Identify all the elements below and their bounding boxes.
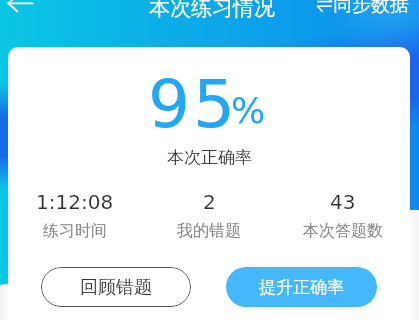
staticText: 本次答题数 (303, 221, 383, 241)
staticText: 43 (330, 190, 356, 213)
button[interactable]: 回顾错题 (41, 267, 191, 307)
staticText: 练习时间 (43, 221, 107, 241)
staticText: 95 (148, 66, 238, 143)
staticText: 回顾错题 (80, 276, 152, 299)
button[interactable]: 提升正确率 (226, 267, 377, 307)
staticText: 同步数据 (333, 0, 409, 17)
button[interactable]: Back (0, 0, 44, 30)
staticText: 我的错题 (177, 221, 241, 241)
staticText: 本次正确率 (167, 147, 252, 168)
staticText: 2 (203, 190, 216, 213)
staticText: 提升正确率 (259, 277, 344, 298)
button[interactable]: 同步数据 (313, 0, 409, 22)
staticText: 本次练习情况 (149, 0, 275, 21)
staticText: % (231, 90, 266, 132)
staticText: 1:12:08 (36, 190, 114, 213)
